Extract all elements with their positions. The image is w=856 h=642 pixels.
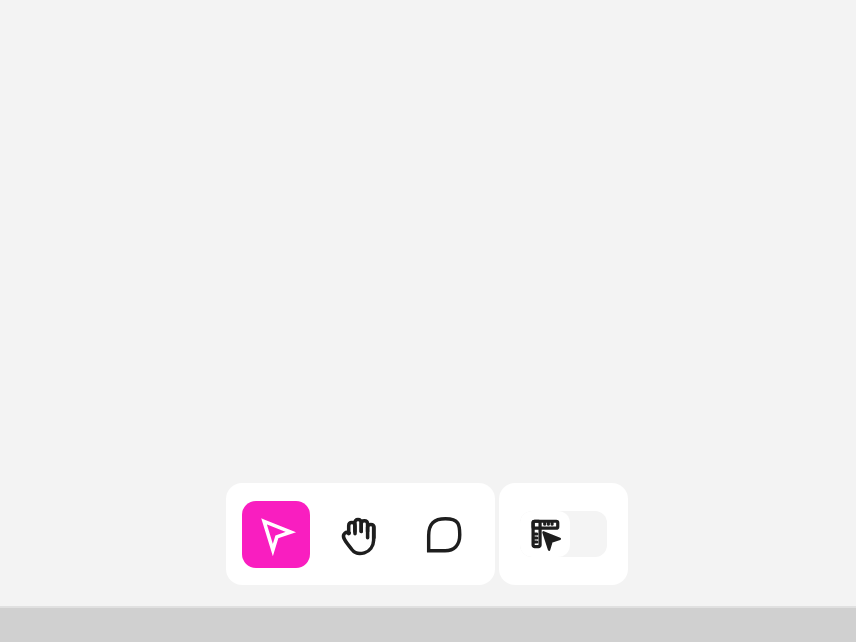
button[interactable]: Comment bbox=[410, 501, 478, 568]
button[interactable]: Select tool bbox=[242, 501, 310, 568]
button[interactable]: Hand tool bbox=[326, 501, 394, 568]
button[interactable]: Measure tool bbox=[520, 511, 607, 557]
